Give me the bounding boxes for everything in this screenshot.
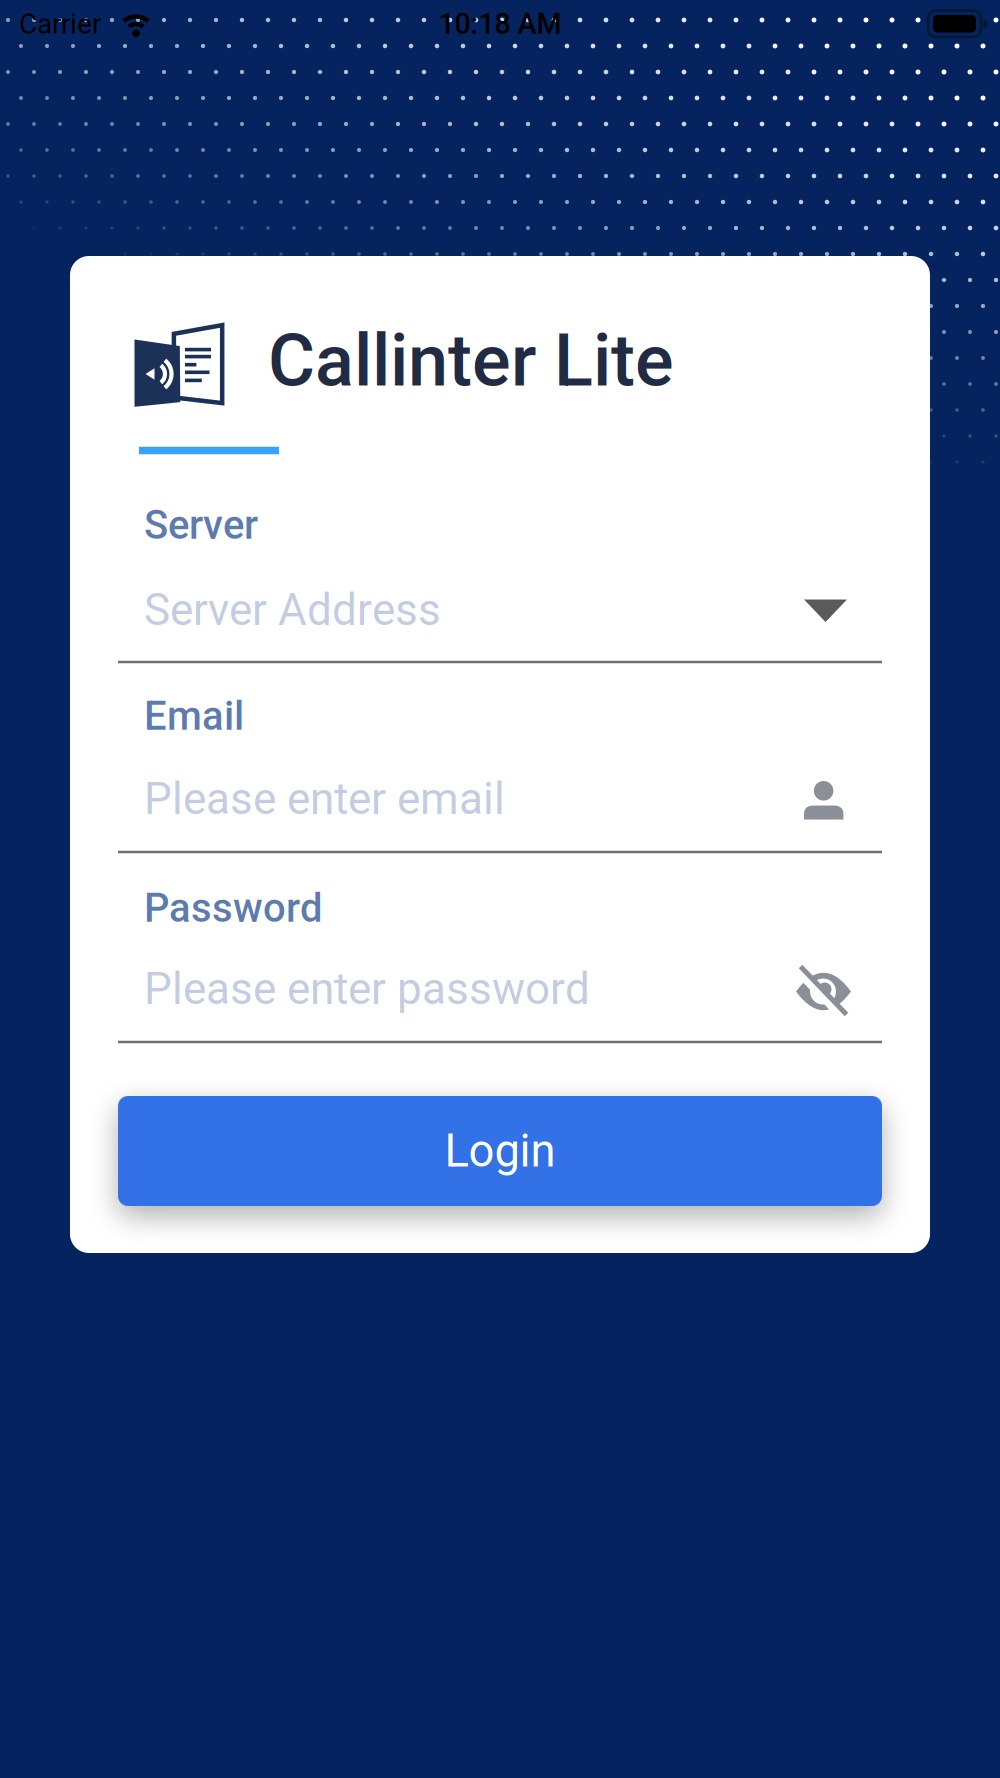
staticText: Please enter email [144, 773, 505, 825]
staticText: Password [144, 885, 323, 931]
staticText: Email [144, 693, 244, 739]
staticText: Callinter Lite [268, 319, 674, 403]
staticText: Server Address [144, 584, 441, 636]
staticText: 10:18 AM [438, 7, 561, 41]
staticText: Server [144, 502, 258, 548]
button[interactable]: Please enter password [118, 949, 882, 1029]
button[interactable]: Please enter email [118, 759, 882, 839]
staticText: Please enter password [144, 963, 590, 1015]
staticText: Carrier [19, 8, 101, 40]
button[interactable]: Server Address [118, 570, 882, 650]
button[interactable]: Login [118, 1096, 882, 1206]
staticText: Login [444, 1124, 555, 1177]
